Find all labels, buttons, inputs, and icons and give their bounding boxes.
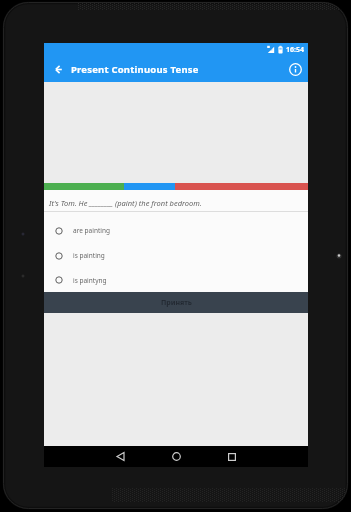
button[interactable]: is painting (44, 243, 308, 268)
button[interactable] (282, 56, 308, 82)
button[interactable] (208, 446, 256, 467)
button[interactable]: are painting (44, 218, 308, 243)
button[interactable] (44, 56, 70, 82)
staticText: is paintyng (73, 276, 107, 285)
button[interactable] (152, 446, 200, 467)
button[interactable]: is paintyng (44, 268, 308, 292)
staticText: Принять (161, 298, 192, 308)
staticText: 16:54 (286, 45, 304, 55)
staticText: It's Tom. He ________ (paint) the front … (49, 198, 202, 208)
button[interactable] (96, 446, 144, 467)
staticText: Present Continuous Tense (71, 63, 199, 76)
staticText: is painting (73, 251, 105, 260)
staticText: are painting (73, 226, 110, 235)
